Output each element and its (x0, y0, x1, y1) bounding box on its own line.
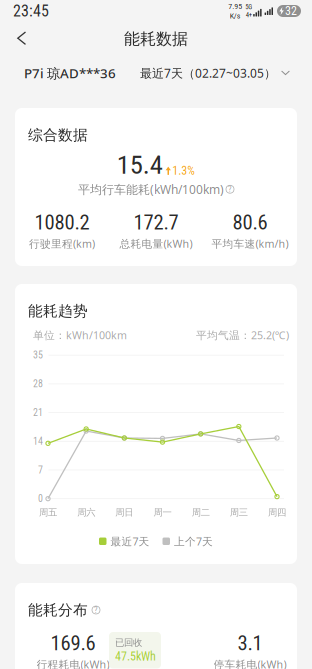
staticText: 28 (33, 378, 43, 390)
staticText: 周二 (192, 507, 210, 518)
staticText: 最近7天 (110, 534, 149, 548)
staticText: 1080.2 (34, 210, 89, 234)
staticText: 能耗趋势 (28, 302, 88, 320)
staticText: 能耗数据 (124, 29, 188, 49)
staticText: 能耗分布 (28, 601, 88, 619)
button[interactable]: 最近7天（02.27~03.05） (140, 58, 290, 88)
staticText: 周六 (77, 507, 95, 518)
staticText: 1.3% (172, 164, 195, 178)
staticText: 3.1 (237, 631, 262, 655)
staticText: 行程耗电(kWh) (36, 657, 109, 669)
staticText: 21 (33, 407, 43, 418)
staticText: 周三 (230, 507, 248, 518)
staticText: 周日 (115, 507, 133, 518)
staticText: 综合数据 (28, 126, 88, 144)
staticText: 15.4 (117, 149, 163, 180)
staticText: 总耗电量(kWh) (119, 236, 192, 251)
staticText: 7.95 (228, 2, 242, 11)
staticText: 上个7天 (174, 534, 213, 548)
staticText: 0 (38, 493, 43, 504)
staticText: 单位：kWh/100km (33, 328, 127, 342)
staticText: 7 (38, 464, 43, 476)
staticText: K/s (230, 11, 241, 20)
staticText: 80.6 (232, 210, 267, 234)
staticText: 平均气温：25.2(℃) (196, 328, 289, 342)
staticText: 35 (33, 349, 43, 361)
staticText: 平均车速(km/h) (211, 236, 288, 251)
staticText: 已回收 (115, 637, 142, 648)
staticText: ? (228, 184, 232, 194)
staticText: 23:45 (13, 2, 49, 20)
staticText: 行驶里程(km) (29, 236, 95, 251)
staticText: 5G (245, 3, 252, 11)
staticText: 32 (285, 4, 297, 18)
staticText: 169.6 (50, 631, 95, 655)
staticText: 4+ (246, 11, 252, 19)
staticText: ? (94, 605, 98, 615)
staticText: 172.7 (133, 210, 178, 234)
staticText: 周五 (39, 507, 57, 518)
staticText: 周一 (153, 507, 171, 518)
button[interactable]: Back (0, 22, 34, 56)
staticText: 周四 (268, 507, 286, 518)
staticText: 47.5kWh (115, 649, 156, 664)
staticText: 最近7天（02.27~03.05） (140, 65, 276, 81)
staticText: 停车耗电(kWh) (213, 657, 286, 669)
staticText: 14 (33, 435, 43, 447)
staticText: P7i 琼AD***36 (24, 64, 116, 82)
staticText: 平均行车能耗(kWh/100km) (78, 181, 224, 197)
